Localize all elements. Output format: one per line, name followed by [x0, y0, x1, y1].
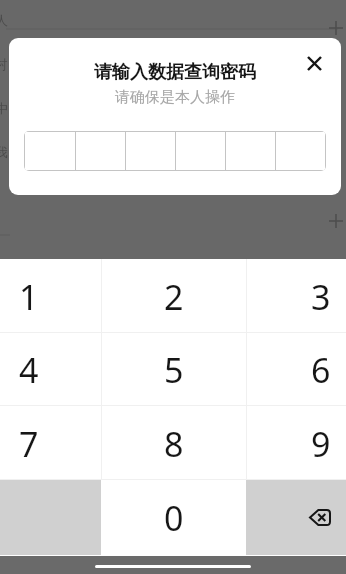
staticText: 请输入数据查询密码	[9, 61, 341, 84]
button[interactable]: 2	[102, 259, 246, 332]
button[interactable]: 9	[247, 406, 346, 479]
button[interactable]: 3	[247, 259, 346, 332]
staticText: 0	[164, 495, 184, 541]
button[interactable]	[25, 132, 325, 170]
button[interactable]: 8	[102, 406, 246, 479]
button[interactable]: 5	[102, 333, 246, 405]
staticText: 3	[311, 274, 331, 320]
button[interactable]: Backspace	[246, 480, 346, 555]
staticText: 5	[164, 347, 184, 393]
button[interactable]: 6	[247, 333, 346, 405]
staticText: 6	[311, 347, 331, 393]
button[interactable]: 1	[0, 259, 101, 332]
button[interactable]: 0	[101, 480, 246, 555]
staticText: 4	[19, 347, 39, 393]
staticText: 我	[0, 144, 8, 160]
button[interactable]: Close	[300, 49, 328, 77]
staticText: 7	[19, 421, 39, 467]
button[interactable]: 7	[0, 406, 101, 479]
staticText: 8	[164, 421, 184, 467]
staticText: 中	[0, 100, 8, 116]
button[interactable]: 4	[0, 333, 101, 405]
staticText: 2	[164, 274, 184, 320]
staticText: 1	[19, 274, 39, 320]
staticText: 村	[0, 56, 8, 72]
staticText: 请确保是本人操作	[9, 88, 341, 107]
staticText: 9	[311, 421, 331, 467]
staticText: 人	[0, 12, 8, 28]
